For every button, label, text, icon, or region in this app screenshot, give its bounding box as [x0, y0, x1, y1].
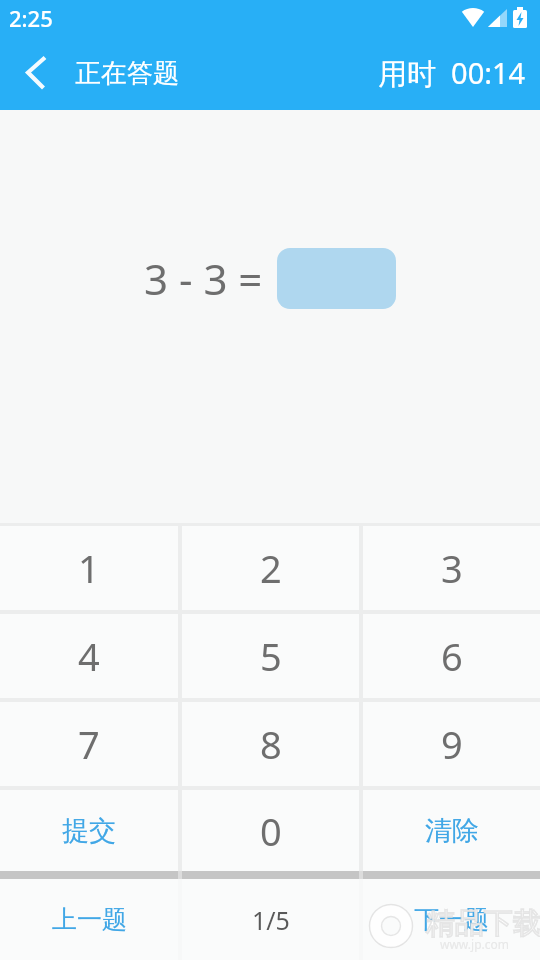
staticText: 0 — [260, 805, 282, 857]
staticText: 5 — [260, 630, 282, 682]
staticText: 4 — [78, 630, 100, 682]
staticText: 用时 00:14 — [378, 53, 526, 93]
button[interactable]: 提交 — [0, 790, 178, 871]
button[interactable]: 4 — [0, 614, 178, 698]
button[interactable]: 1/5 — [182, 879, 359, 960]
staticText: 1/5 — [252, 903, 290, 937]
staticText: 清除 — [425, 814, 479, 848]
button[interactable]: 2 — [182, 526, 359, 610]
button[interactable]: 上一题 — [0, 879, 178, 960]
button[interactable]: 1 — [0, 526, 178, 610]
staticText: 9 — [441, 718, 463, 770]
button[interactable]: 6 — [363, 614, 540, 698]
staticText: 提交 — [62, 814, 116, 848]
staticText: 2 — [260, 542, 282, 594]
staticText: 1 — [78, 542, 100, 594]
staticText: 3 — [441, 542, 463, 594]
button[interactable]: 7 — [0, 702, 178, 786]
button[interactable]: 3 — [363, 526, 540, 610]
button[interactable]: 下一题 — [363, 879, 540, 960]
staticText: 6 — [441, 630, 463, 682]
staticText: 精品下载 — [426, 905, 540, 942]
button[interactable]: 0 — [182, 790, 359, 871]
staticText: 正在答题 — [75, 57, 179, 90]
staticText: 3 - 3 = — [144, 250, 274, 307]
staticText: 2:25 — [9, 3, 53, 33]
staticText: 7 — [78, 718, 100, 770]
button[interactable]: 9 — [363, 702, 540, 786]
button[interactable]: 8 — [182, 702, 359, 786]
staticText: www.jp.com — [440, 936, 509, 952]
button[interactable] — [21, 56, 55, 90]
staticText: 精品下载 — [426, 905, 540, 942]
button[interactable]: 清除 — [363, 790, 540, 871]
button[interactable]: 5 — [182, 614, 359, 698]
staticText: 下一题 — [414, 904, 489, 935]
staticText: 上一题 — [52, 904, 127, 935]
staticText: 8 — [260, 718, 282, 770]
